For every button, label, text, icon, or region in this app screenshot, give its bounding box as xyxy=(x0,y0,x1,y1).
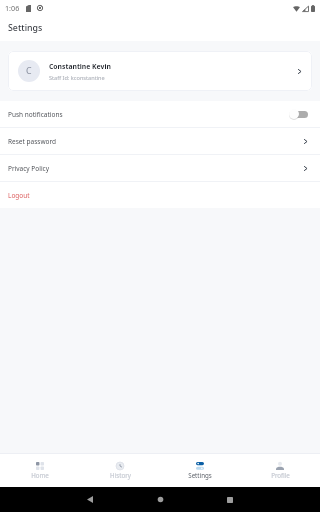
staticText: Home xyxy=(31,471,49,479)
staticText: C xyxy=(26,65,32,77)
button[interactable]: Reset password xyxy=(0,128,320,154)
staticText: Constantine Kevin xyxy=(49,62,111,71)
button[interactable]: Home xyxy=(0,454,80,487)
button[interactable]: C xyxy=(8,51,312,91)
staticText: Profile xyxy=(271,471,290,479)
staticText: Push notifications xyxy=(8,110,63,119)
button[interactable]: Settings xyxy=(160,454,240,487)
button[interactable]: Home xyxy=(125,487,195,512)
staticText: Logout xyxy=(8,191,30,200)
staticText: Settings xyxy=(188,471,212,479)
staticText: Staff Id: kconstantine xyxy=(49,74,105,82)
button[interactable]: Privacy Policy xyxy=(0,155,320,181)
other: Push notifications toggle xyxy=(289,108,309,120)
button[interactable]: Push notifications xyxy=(0,101,320,127)
staticText: Settings xyxy=(8,22,43,34)
button[interactable]: Back xyxy=(55,487,125,512)
button[interactable]: History xyxy=(80,454,160,487)
button[interactable]: Profile xyxy=(240,454,320,487)
staticText: 1:06 xyxy=(5,3,20,13)
button[interactable]: Recent apps xyxy=(195,487,265,512)
staticText: Reset password xyxy=(8,137,56,146)
staticText: History xyxy=(110,471,131,479)
staticText: Privacy Policy xyxy=(8,164,50,173)
button[interactable]: Logout xyxy=(0,182,320,208)
